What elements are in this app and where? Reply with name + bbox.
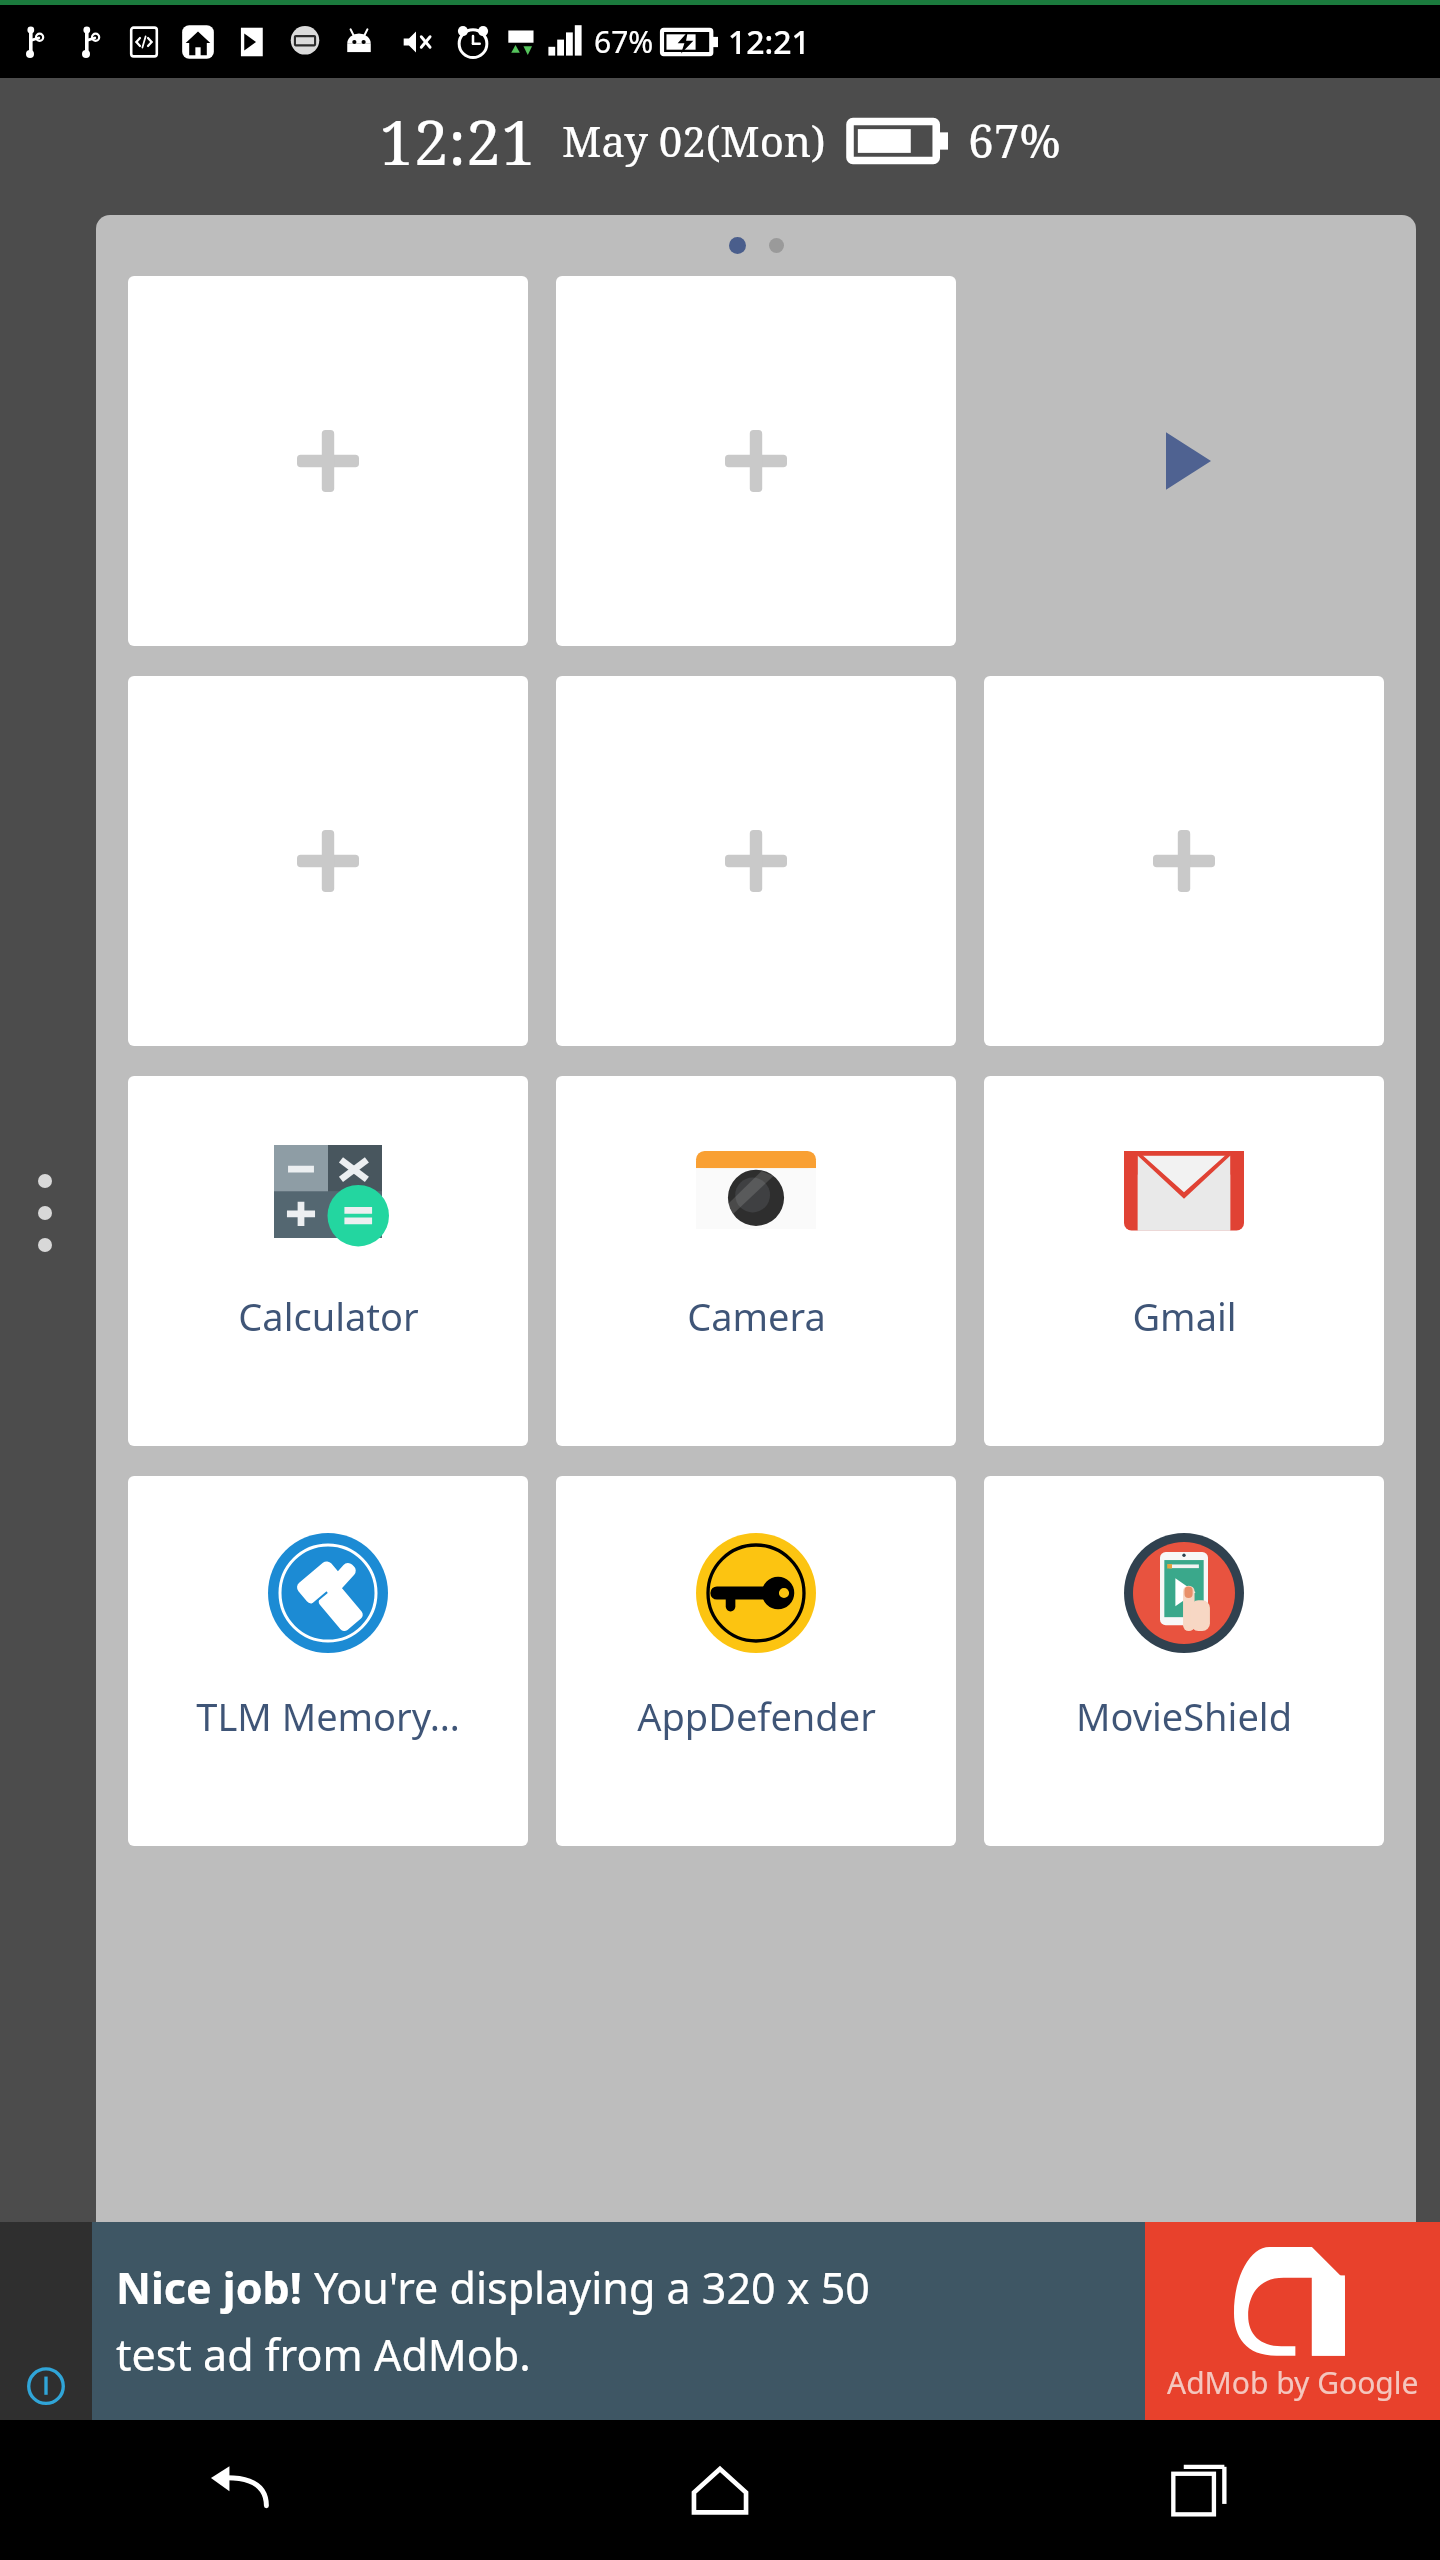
staticText: 67% xyxy=(594,21,654,62)
button[interactable]: Gmail xyxy=(984,1076,1384,1446)
button[interactable]: Nice job! xyxy=(0,2222,1440,2420)
button[interactable]: AppDefender xyxy=(556,1476,956,1846)
staticText: AppDefender xyxy=(637,1690,876,1742)
button[interactable]: Add shortcut xyxy=(556,276,956,646)
button[interactable]: Camera xyxy=(556,1076,956,1446)
button[interactable]: Back xyxy=(0,2420,480,2560)
button[interactable]: More options xyxy=(0,203,90,2222)
button[interactable]: Add shortcut xyxy=(128,276,528,646)
staticText: Nice job! xyxy=(116,2258,314,2317)
staticText: Camera xyxy=(687,1290,826,1342)
button[interactable]: Page 2 xyxy=(769,238,784,253)
staticText: 12:21 xyxy=(379,99,536,183)
staticText: May 02(Mon) xyxy=(562,112,826,169)
button[interactable]: Next page xyxy=(984,276,1384,646)
staticText: 12:21 xyxy=(728,20,810,64)
button[interactable]: Page 1 xyxy=(729,237,746,254)
button[interactable]: MovieShield xyxy=(984,1476,1384,1846)
staticText: You're displaying a 320 x 50 xyxy=(314,2258,870,2317)
button[interactable]: Add shortcut xyxy=(128,676,528,1046)
staticText: Calculator xyxy=(238,1290,419,1342)
staticText: MovieShield xyxy=(1076,1690,1292,1742)
button[interactable]: Home xyxy=(480,2420,960,2560)
button[interactable]: Add shortcut xyxy=(556,676,956,1046)
button[interactable]: Recent apps xyxy=(960,2420,1440,2560)
button[interactable]: Add shortcut xyxy=(984,676,1384,1046)
staticText: test ad from AdMob. xyxy=(116,2325,531,2384)
staticText: Gmail xyxy=(1132,1290,1237,1342)
button[interactable]: AdMob by Google xyxy=(1145,2222,1440,2420)
staticText: TLM Memory… xyxy=(196,1690,460,1742)
staticText: AdMob by Google xyxy=(1167,2362,1419,2403)
button[interactable]: Calculator xyxy=(128,1076,528,1446)
staticText: 67% xyxy=(968,109,1061,172)
button[interactable]: TLM Memory… xyxy=(128,1476,528,1846)
